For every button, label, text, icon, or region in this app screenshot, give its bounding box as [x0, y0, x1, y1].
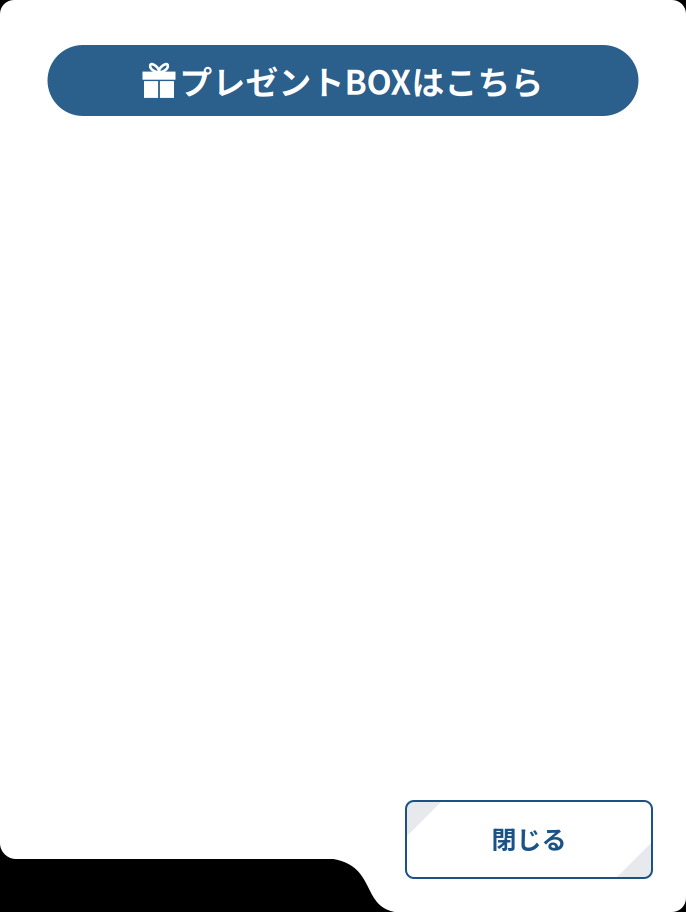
button[interactable]: 閉じる: [405, 800, 653, 879]
staticText: 閉じる: [491, 820, 566, 856]
staticText: プレゼントBOXはこちら: [179, 57, 543, 104]
button[interactable]: プレゼントBOXはこちら: [47, 45, 638, 116]
